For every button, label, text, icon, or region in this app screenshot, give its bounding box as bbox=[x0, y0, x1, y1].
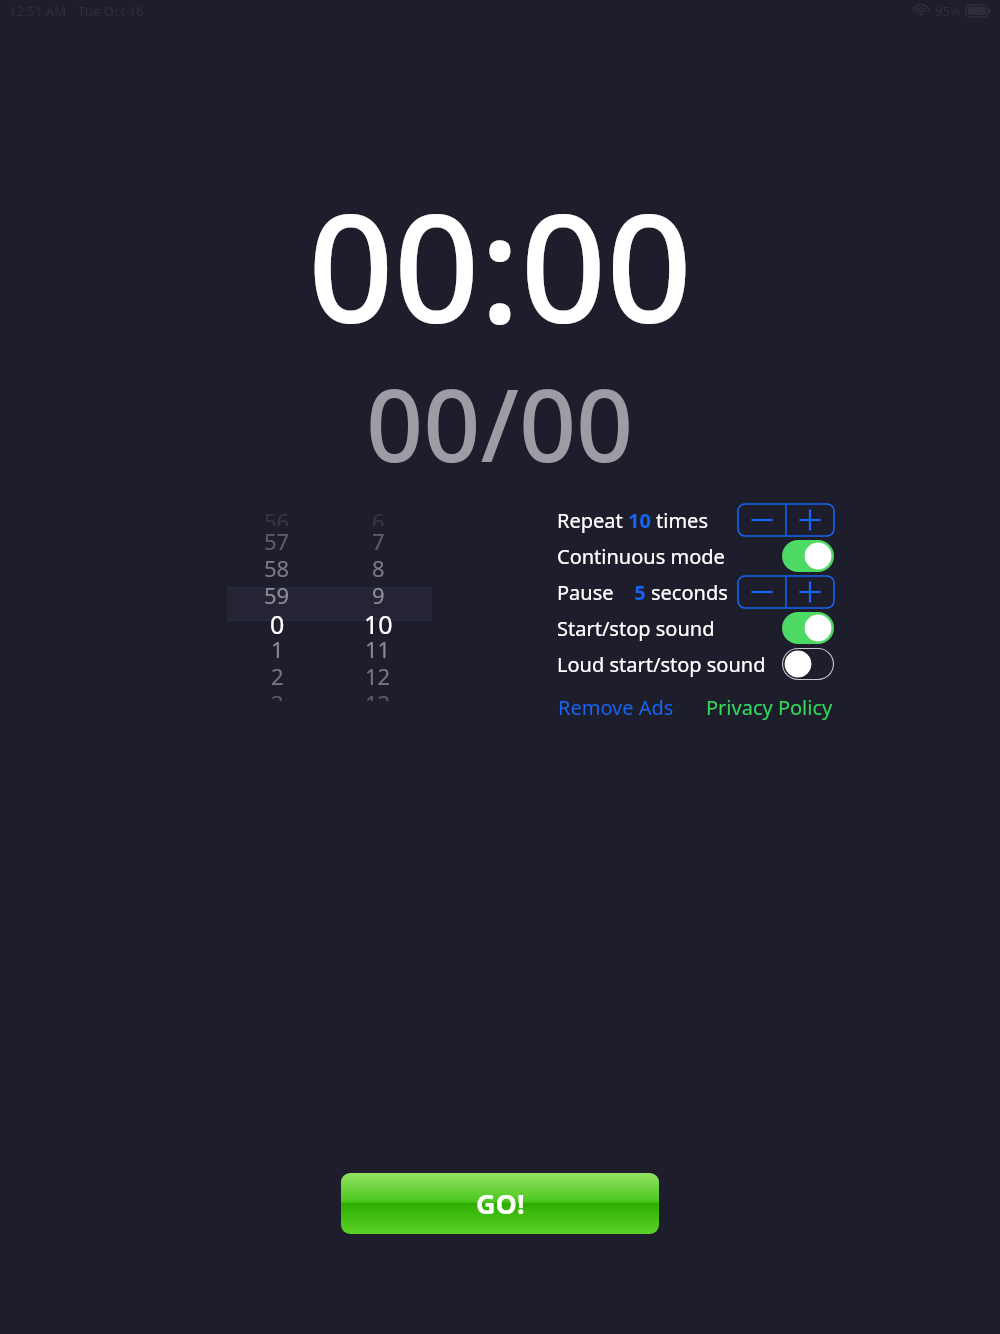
staticText: 58 bbox=[264, 553, 290, 580]
button[interactable]: Decrease bbox=[738, 504, 786, 536]
button[interactable]: Minutes bbox=[237, 506, 317, 701]
staticText: 57 bbox=[264, 526, 290, 553]
staticText: GO! bbox=[476, 1185, 525, 1222]
staticText: 7 bbox=[372, 526, 385, 553]
staticText: Repeat 10 times bbox=[557, 507, 708, 534]
staticText: 12:51 AM bbox=[9, 2, 67, 20]
button[interactable]: Pause 5 seconds bbox=[557, 576, 834, 608]
staticText: 2 bbox=[271, 661, 284, 688]
staticText: 11 bbox=[365, 634, 391, 661]
staticText: 0 bbox=[270, 607, 285, 634]
staticText: 00:00 bbox=[308, 163, 693, 367]
button[interactable]: Loud start/stop sound bbox=[557, 648, 834, 680]
staticText: Pause 5 seconds bbox=[557, 579, 728, 606]
staticText: Continuous mode bbox=[557, 543, 725, 570]
staticText: Remove Ads bbox=[558, 694, 674, 721]
button[interactable]: Privacy Policy bbox=[705, 689, 834, 726]
staticText: 59 bbox=[264, 580, 290, 607]
button[interactable]: GO! bbox=[341, 1173, 659, 1234]
staticText: Loud start/stop sound bbox=[557, 651, 766, 678]
button[interactable]: Increase bbox=[786, 576, 834, 608]
staticText: 8 bbox=[372, 553, 385, 580]
staticText: 1 bbox=[271, 634, 284, 661]
staticText: Start/stop sound bbox=[557, 615, 715, 642]
staticText: 10 bbox=[364, 607, 393, 634]
button[interactable]: Decrease bbox=[738, 576, 786, 608]
staticText: Privacy Policy bbox=[706, 694, 833, 721]
button[interactable]: Loud start stop sound bbox=[782, 648, 834, 680]
button[interactable]: Continuous mode bbox=[782, 540, 834, 572]
staticText: 3 bbox=[271, 688, 284, 701]
staticText: 6 bbox=[372, 506, 385, 526]
button[interactable]: Continuous mode bbox=[557, 540, 834, 572]
button[interactable]: Remove Ads bbox=[557, 689, 675, 726]
staticText: 12 bbox=[365, 661, 391, 688]
button[interactable]: Start/stop sound bbox=[557, 612, 834, 644]
button[interactable]: Increase bbox=[786, 504, 834, 536]
button[interactable]: Repeat 10 times bbox=[557, 504, 834, 536]
staticText: 56 bbox=[264, 506, 290, 526]
staticText: 9 bbox=[372, 580, 385, 607]
staticText: 00/00 bbox=[366, 355, 634, 491]
button[interactable]: Seconds bbox=[338, 506, 418, 701]
button[interactable]: Start stop sound bbox=[782, 612, 834, 644]
staticText: 95% bbox=[935, 2, 961, 20]
staticText: 13 bbox=[365, 688, 391, 701]
staticText: Tue Oct 16 bbox=[78, 2, 144, 20]
